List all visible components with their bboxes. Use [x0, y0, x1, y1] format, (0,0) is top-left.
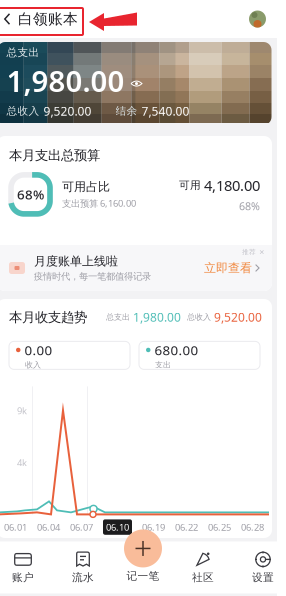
staticText: 0.00 [24, 341, 52, 359]
staticText: 立即查看 [204, 261, 252, 275]
button[interactable]: 账户 [0, 547, 49, 587]
staticText: 1,980.00 [130, 309, 181, 325]
button[interactable]: 社区 [177, 547, 229, 587]
staticText: 收入 [25, 360, 41, 370]
staticText: 总支出 [6, 46, 39, 59]
staticText: 社区 [192, 571, 214, 584]
staticText: 可用 [179, 179, 201, 192]
staticText: 疫情时代，每一笔都值得记录 [34, 271, 151, 282]
staticText: 4k [17, 456, 27, 469]
staticText: 68% [239, 199, 260, 213]
staticText: 本月收支趋势 [9, 309, 87, 325]
staticText: 设置 [252, 571, 274, 584]
staticText: 结余 [115, 104, 137, 118]
staticText: 1,980.00 [6, 61, 124, 100]
staticText: 月度账单上线啦 [34, 254, 118, 269]
button[interactable]: 流水 [57, 547, 109, 587]
staticText: 06.22 [175, 521, 198, 533]
staticText: ✕ [259, 248, 265, 256]
staticText: 06.19 [142, 521, 165, 533]
staticText: 推荐 [242, 248, 256, 256]
staticText: 白领账本 [18, 10, 78, 28]
button[interactable]: 记一笔 [124, 529, 162, 567]
staticText: 4,180.00 [204, 176, 260, 195]
staticText: 总支出 [106, 312, 130, 322]
staticText: 7,540.00 [141, 103, 189, 119]
staticText: 68% [17, 185, 44, 203]
staticText: 06.07 [70, 521, 93, 533]
staticText: 06.28 [241, 521, 264, 533]
staticText: 流水 [72, 571, 94, 584]
staticText: 9,520.00 [211, 309, 262, 325]
staticText: 9k [17, 404, 27, 417]
button[interactable]: 月度账单上线啦 [0, 245, 272, 291]
staticText: 支出预算 6,160.00 [62, 197, 136, 209]
staticText: 账户 [12, 571, 34, 584]
staticText: 总收入 [187, 312, 211, 322]
staticText: 06.01 [4, 521, 27, 533]
staticText: 06.04 [37, 521, 60, 533]
staticText: 680.00 [154, 341, 198, 359]
button[interactable]: 记一笔 [126, 569, 159, 582]
staticText: 总收入 [6, 104, 39, 118]
button[interactable]: 白领账本 [0, 0, 91, 38]
staticText: 06.10 [106, 521, 129, 533]
staticText: 9,520.00 [43, 103, 91, 119]
staticText: 支出 [155, 360, 171, 370]
button[interactable]: 设置 [237, 547, 286, 587]
staticText: 记一笔 [126, 569, 159, 582]
staticText: 06.25 [208, 521, 231, 533]
staticText: 本月支出总预算 [9, 147, 100, 163]
staticText: 可用占比 [62, 179, 110, 194]
button[interactable]: 个人中心 [249, 0, 278, 38]
